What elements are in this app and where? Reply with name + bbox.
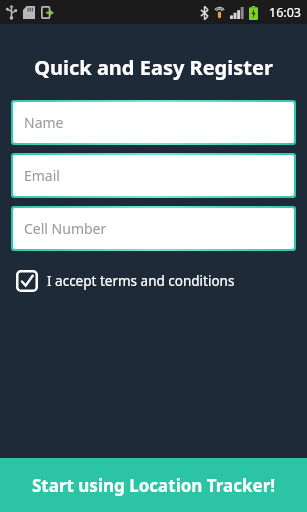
- button[interactable]: Cell Number: [13, 208, 294, 249]
- button[interactable]: Name: [13, 102, 294, 143]
- other: Accept terms and conditions checkbox: [16, 270, 38, 292]
- staticText: Cell Number: [24, 219, 107, 238]
- staticText: 16:03: [269, 4, 301, 21]
- button[interactable]: Accept terms and conditions checkbox: [16, 268, 235, 294]
- staticText: Email: [24, 166, 60, 185]
- button[interactable]: Start using Location Tracker!: [0, 458, 307, 512]
- staticText: Start using Location Tracker!: [32, 474, 276, 497]
- staticText: Quick and Easy Register: [0, 54, 307, 81]
- button[interactable]: Email: [13, 155, 294, 196]
- staticText: Name: [24, 113, 64, 132]
- staticText: I accept terms and conditions: [47, 272, 235, 290]
